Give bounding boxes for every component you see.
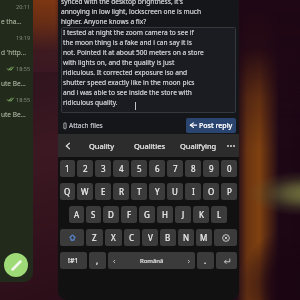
button[interactable]: K [193, 206, 209, 223]
staticText: 18:55 [16, 96, 31, 103]
staticText: 20:11 [16, 3, 31, 10]
staticText: F [127, 209, 132, 220]
button[interactable]: 19:19 [0, 34, 33, 65]
staticText: 7 [173, 163, 178, 174]
button[interactable]: 1 [60, 160, 75, 177]
staticText: e tha... [1, 17, 22, 26]
button[interactable]: New chat [4, 253, 28, 277]
button[interactable]: Q [60, 183, 75, 200]
staticText: d 'http... [1, 48, 27, 57]
button[interactable]: W [77, 183, 93, 200]
staticText: 8 [191, 163, 196, 174]
button[interactable]: M [196, 229, 212, 246]
button[interactable]: 0 [221, 160, 237, 177]
button[interactable]: R [113, 183, 129, 200]
button[interactable]: U [167, 183, 183, 200]
button[interactable]: Attach files [61, 119, 105, 132]
button[interactable]: S [86, 206, 101, 223]
button[interactable]: 4 [113, 160, 129, 177]
staticText: G [144, 209, 150, 220]
button[interactable]: I [185, 183, 201, 200]
staticText: ute Be... [1, 79, 26, 88]
button[interactable]: G [139, 206, 155, 223]
staticText: Română [140, 257, 164, 265]
button[interactable]: 9 [203, 160, 219, 177]
button[interactable]: 5 [131, 160, 147, 177]
button[interactable]: !#1 [60, 252, 87, 269]
button[interactable]: D [103, 206, 119, 223]
button[interactable]: J [175, 206, 191, 223]
button[interactable]: V [142, 229, 158, 246]
button[interactable]: 7 [167, 160, 183, 177]
staticText: Qualities [134, 141, 166, 151]
button[interactable]: 18:55 [0, 96, 33, 127]
button[interactable]: E [95, 183, 111, 200]
staticText: Z [92, 232, 97, 243]
staticText: H [162, 209, 168, 220]
button[interactable]: Quality [78, 134, 126, 157]
staticText: 18:55 [16, 65, 31, 72]
staticText: E [101, 186, 106, 197]
button[interactable]: L [211, 206, 227, 223]
button[interactable]: N [178, 229, 194, 246]
button[interactable]: O [203, 183, 219, 200]
button[interactable]: Z [86, 229, 103, 246]
button[interactable]: H [157, 206, 173, 223]
button[interactable]: Shift [60, 229, 84, 246]
button[interactable]: F [121, 206, 137, 223]
button[interactable]: . [197, 252, 214, 269]
staticText: D [108, 209, 114, 220]
staticText: U [172, 186, 178, 197]
button[interactable]: A [69, 206, 84, 223]
button[interactable]: Enter [216, 252, 237, 269]
button[interactable]: Română [108, 252, 195, 269]
staticText: 3 [101, 163, 106, 174]
staticText: synced with the desktop brightness, it's… [61, 0, 202, 26]
staticText: N [183, 232, 190, 243]
button[interactable]: 2 [77, 160, 93, 177]
staticText: 5 [137, 163, 142, 174]
button[interactable]: P [221, 183, 237, 200]
staticText: V [148, 232, 153, 243]
staticText: , [96, 255, 99, 266]
staticText: 19:19 [16, 34, 31, 41]
staticText: Qualifying [180, 141, 217, 151]
button[interactable]: Qualities [126, 134, 174, 157]
staticText: Attach files [69, 121, 103, 130]
button[interactable]: T [131, 183, 147, 200]
staticText: Q [64, 186, 71, 197]
staticText: W [81, 186, 89, 197]
staticText: 9 [209, 163, 214, 174]
staticText: I [192, 186, 195, 197]
staticText: I tested at night the zoom camera to see… [63, 28, 204, 107]
button[interactable]: B [160, 229, 176, 246]
button[interactable]: Y [149, 183, 165, 200]
button[interactable]: Qualifying [174, 134, 222, 157]
button[interactable]: Back [58, 134, 78, 157]
button[interactable]: 20:11 [0, 3, 33, 34]
staticText: R [119, 186, 124, 197]
button[interactable]: More options [222, 134, 239, 157]
button[interactable]: Backspace [214, 229, 237, 246]
staticText: K [199, 209, 204, 220]
staticText: 1 [65, 163, 70, 174]
staticText: . [204, 255, 207, 266]
staticText: L [217, 209, 222, 220]
staticText: S [91, 209, 96, 220]
staticText: C [129, 232, 135, 243]
button[interactable]: C [124, 229, 140, 246]
staticText: Quality [89, 141, 115, 151]
staticText: 4 [119, 163, 124, 174]
staticText: P [227, 186, 232, 197]
staticText: 6 [155, 163, 160, 174]
button[interactable]: 8 [185, 160, 201, 177]
staticText: M [200, 232, 208, 243]
button[interactable]: , [89, 252, 106, 269]
button[interactable]: Post reply [186, 118, 236, 133]
button[interactable]: 6 [149, 160, 165, 177]
staticText: 0 [227, 163, 232, 174]
button[interactable]: 18:55 [0, 65, 33, 96]
button[interactable]: X [105, 229, 122, 246]
staticText: ute Be... [1, 110, 26, 119]
button[interactable]: 3 [95, 160, 111, 177]
